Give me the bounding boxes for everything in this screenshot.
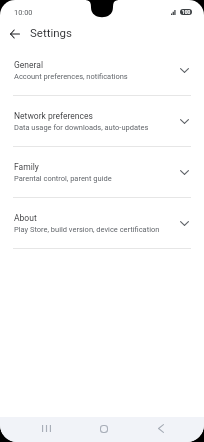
staticText: Family	[14, 162, 39, 172]
button[interactable]: Back	[145, 416, 177, 441]
staticText: General	[14, 60, 43, 70]
staticText: Network preferences	[14, 111, 93, 121]
staticText: 10:00	[14, 8, 33, 17]
button[interactable]: About	[0, 198, 204, 248]
button[interactable]: Navigate up	[3, 22, 27, 45]
button[interactable]: General	[0, 45, 204, 95]
staticText: 100	[182, 9, 191, 15]
button[interactable]: Home	[88, 416, 120, 441]
staticText: Account preferences, notifications	[14, 72, 128, 81]
staticText: Play Store, build version, device certif…	[14, 225, 160, 234]
button[interactable]: Network preferences	[0, 96, 204, 146]
button[interactable]: Recent apps	[30, 416, 62, 441]
staticText: About	[14, 213, 37, 223]
staticText: Parental control, parent guide	[14, 174, 112, 183]
staticText: Settings	[30, 26, 72, 39]
staticText: Data usage for downloads, auto-updates	[14, 123, 149, 132]
button[interactable]: Family	[0, 147, 204, 197]
